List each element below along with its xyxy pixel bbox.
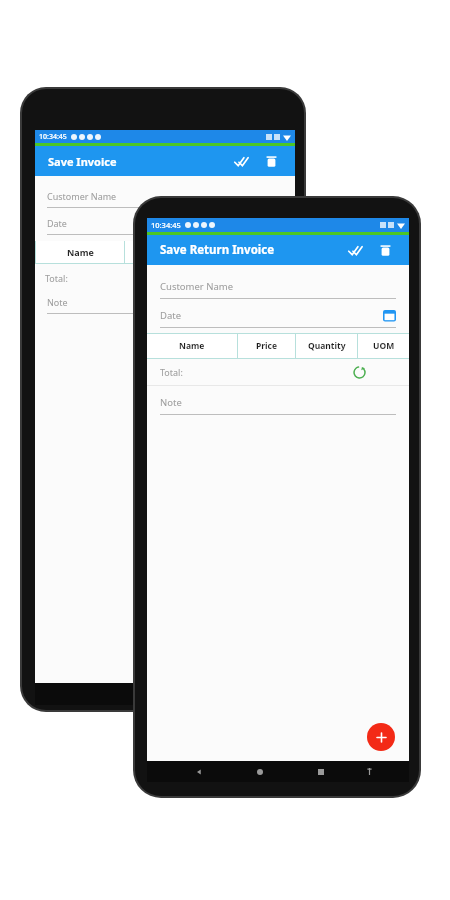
staticText: Save Return Invoice bbox=[160, 242, 275, 258]
button[interactable]: Refresh total bbox=[350, 363, 368, 381]
staticText: Customer Name bbox=[160, 280, 234, 293]
button[interactable]: Customer Name bbox=[160, 280, 396, 299]
staticText: 10:34:45 bbox=[39, 132, 67, 142]
button[interactable]: Note bbox=[160, 396, 396, 415]
button[interactable]: Delete bbox=[260, 150, 282, 172]
button[interactable]: Keyboard bbox=[351, 761, 387, 782]
button[interactable]: Name bbox=[36, 241, 124, 263]
staticText: Price bbox=[256, 340, 278, 352]
button[interactable]: Save bbox=[344, 239, 366, 261]
button[interactable]: Date bbox=[47, 217, 283, 235]
button[interactable]: Save bbox=[230, 150, 252, 172]
button[interactable]: Quantity bbox=[296, 334, 357, 358]
staticText: Note bbox=[47, 296, 68, 308]
button[interactable]: Recents bbox=[290, 761, 351, 782]
button[interactable]: Customer Name bbox=[47, 190, 283, 208]
button[interactable]: Back bbox=[169, 761, 229, 782]
other: Pick date bbox=[383, 309, 396, 322]
staticText: Name bbox=[179, 340, 205, 352]
staticText: Name bbox=[67, 246, 94, 258]
button[interactable]: Home bbox=[229, 761, 290, 782]
staticText: UOM bbox=[373, 340, 395, 352]
staticText: Total: bbox=[45, 272, 68, 284]
button[interactable]: Price bbox=[238, 334, 295, 358]
staticText: Date bbox=[160, 309, 182, 322]
staticText: Total: bbox=[160, 366, 183, 378]
staticText: Note bbox=[160, 396, 182, 409]
button[interactable]: Add item bbox=[367, 723, 395, 751]
staticText: Date bbox=[47, 217, 67, 229]
button[interactable]: Delete bbox=[374, 239, 396, 261]
button[interactable]: UOM bbox=[358, 334, 409, 358]
button[interactable]: Name bbox=[147, 334, 237, 358]
staticText: Save Invoice bbox=[48, 154, 117, 169]
button[interactable]: Note bbox=[47, 296, 283, 314]
staticText: 10:34:45 bbox=[151, 220, 181, 230]
button[interactable]: Date bbox=[160, 309, 396, 328]
staticText: Customer Name bbox=[47, 190, 117, 202]
staticText: Quantity bbox=[308, 340, 346, 352]
